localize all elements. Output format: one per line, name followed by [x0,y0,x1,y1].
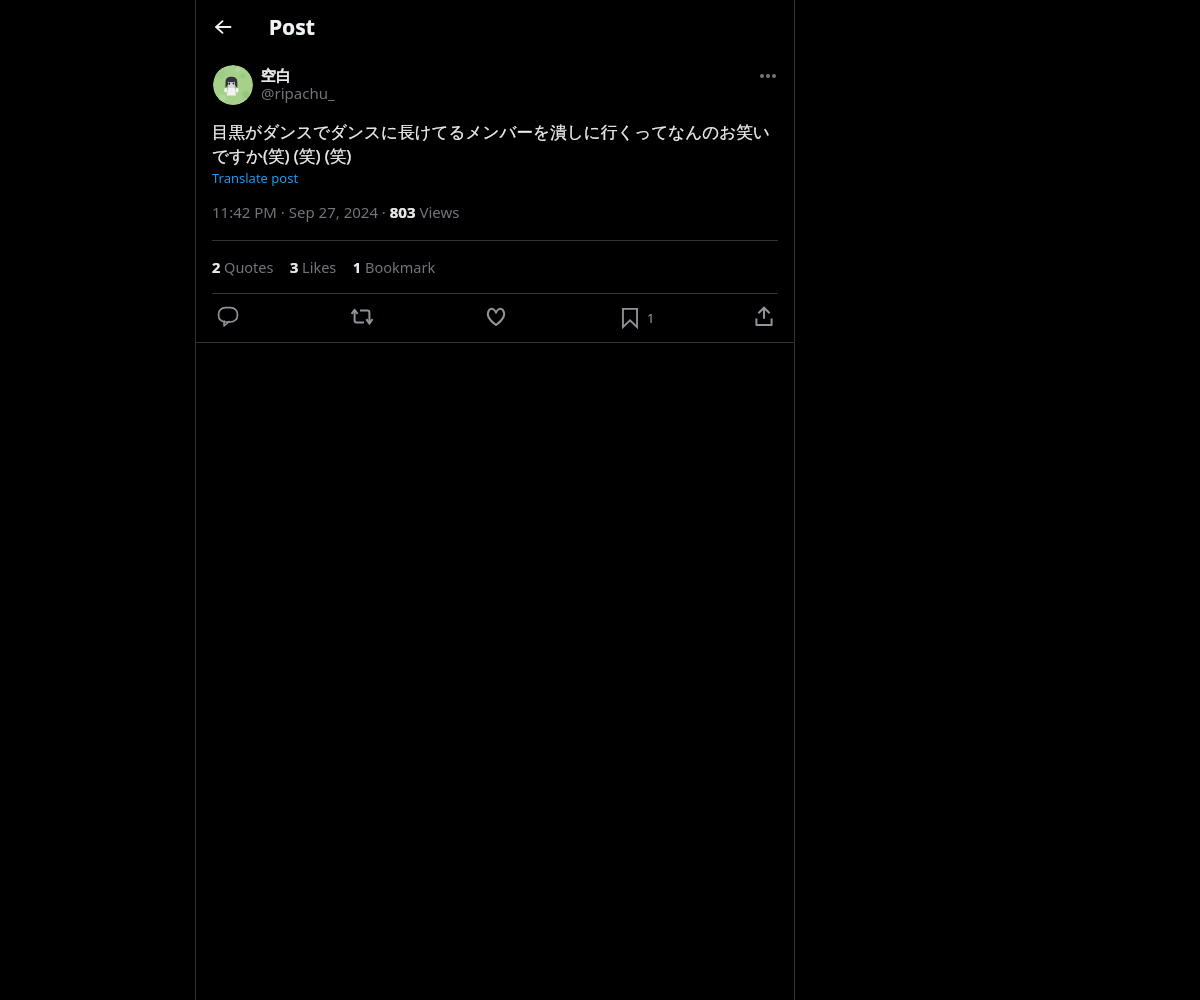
button[interactable]: 1 Bookmark [353,257,436,277]
staticText: 2 Quotes [212,257,274,277]
staticText: 1 Bookmark [353,257,436,277]
button[interactable]: Share [747,299,781,333]
button[interactable] [213,65,253,105]
staticText: @ripachu_ [261,83,335,103]
button[interactable]: Translate post [212,169,299,187]
staticText: 目黒がダンスでダンスに長けてるメンバーを潰しに行くってなんのお笑いですか(笑) … [212,122,778,167]
button[interactable]: Repost [345,299,379,333]
button[interactable]: 3 Likes [290,257,337,277]
button[interactable]: Bookmark [613,299,664,333]
button[interactable]: Reply [211,299,245,333]
staticText: 1 [647,309,655,327]
button[interactable]: More options [753,61,783,91]
staticText: 3 Likes [290,257,337,277]
staticText: 空白 [261,67,291,86]
button[interactable]: 2 Quotes [212,257,274,277]
button[interactable]: Back [205,9,241,45]
staticText: 11:42 PM · Sep 27, 2024 · 803 Views [212,202,460,222]
staticText: Post [269,13,315,42]
button[interactable]: Like [479,299,513,333]
